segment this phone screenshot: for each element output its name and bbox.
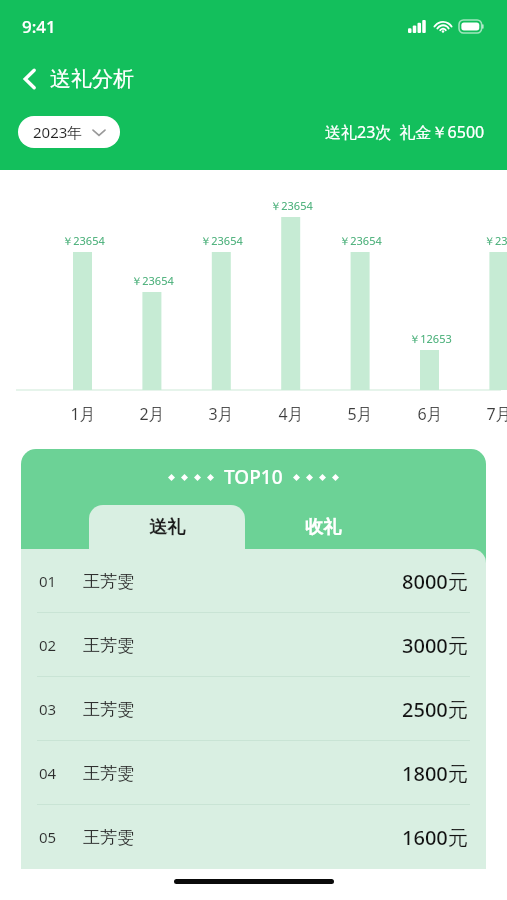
button[interactable]: 送礼	[89, 505, 245, 549]
staticText: 送礼23次 礼金￥6500	[325, 121, 485, 143]
button[interactable]: 2023年	[18, 116, 120, 148]
button[interactable]: 03	[21, 677, 486, 741]
button[interactable]: 04	[21, 741, 486, 805]
staticText: 王芳雯	[83, 763, 134, 784]
staticText: 收礼	[305, 516, 341, 539]
staticText: 1600元	[402, 824, 468, 851]
button[interactable]: 02	[21, 613, 486, 677]
staticText: 7月	[486, 403, 507, 425]
button[interactable]: 05	[21, 805, 486, 869]
staticText: 2023年	[33, 122, 83, 142]
staticText: 03	[39, 699, 57, 719]
staticText: 01	[39, 571, 57, 591]
staticText: 6月	[417, 403, 443, 425]
button[interactable]: 收礼	[245, 505, 401, 549]
staticText: ￥23654	[62, 233, 105, 248]
staticText: ￥236	[484, 233, 507, 248]
button[interactable]: 01	[21, 549, 486, 613]
staticText: 1800元	[402, 760, 468, 787]
staticText: TOP10	[224, 464, 283, 490]
staticText: ￥23654	[339, 233, 382, 248]
staticText: 送礼分析	[50, 66, 134, 92]
staticText: 02	[39, 635, 57, 655]
staticText: 送礼	[149, 516, 185, 539]
staticText: 3000元	[402, 632, 468, 659]
staticText: 王芳雯	[83, 571, 134, 592]
staticText: ￥23654	[131, 273, 174, 288]
staticText: 04	[39, 763, 57, 783]
staticText: 王芳雯	[83, 635, 134, 656]
staticText: 5月	[347, 403, 373, 425]
staticText: 2月	[139, 403, 165, 425]
staticText: ￥23654	[270, 198, 313, 213]
staticText: ￥23654	[200, 233, 243, 248]
staticText: 4月	[278, 403, 304, 425]
staticText: 9:41	[22, 15, 56, 38]
staticText: 05	[39, 827, 57, 847]
staticText: 1月	[70, 403, 96, 425]
staticText: 王芳雯	[83, 699, 134, 720]
staticText: 2500元	[402, 696, 468, 723]
staticText: ￥12653	[409, 331, 452, 346]
staticText: 3月	[208, 403, 234, 425]
staticText: 8000元	[402, 568, 468, 595]
staticText: 王芳雯	[83, 827, 134, 848]
button[interactable]: Back	[12, 61, 48, 97]
